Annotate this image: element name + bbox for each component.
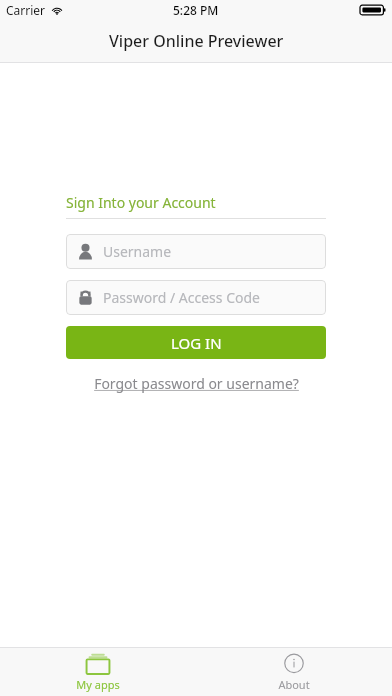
staticText: Sign Into your Account xyxy=(66,193,216,212)
staticText: Viper Online Previewer xyxy=(109,30,284,52)
staticText: Carrier xyxy=(6,2,46,18)
staticText: About xyxy=(278,677,310,692)
button[interactable]: LOG IN xyxy=(66,326,326,359)
staticText: LOG IN xyxy=(171,333,222,353)
button[interactable]: About xyxy=(239,650,349,695)
staticText: My apps xyxy=(76,677,120,692)
button[interactable]: Password / Access Code xyxy=(66,280,326,315)
staticText: Password / Access Code xyxy=(103,288,260,307)
staticText: Username xyxy=(103,242,172,261)
staticText: Forgot password or username? xyxy=(94,374,299,393)
button[interactable]: Forgot password or username? xyxy=(90,372,303,395)
button[interactable]: My apps xyxy=(43,650,153,695)
button[interactable]: Username xyxy=(66,234,326,269)
staticText: 5:28 PM xyxy=(173,2,219,18)
